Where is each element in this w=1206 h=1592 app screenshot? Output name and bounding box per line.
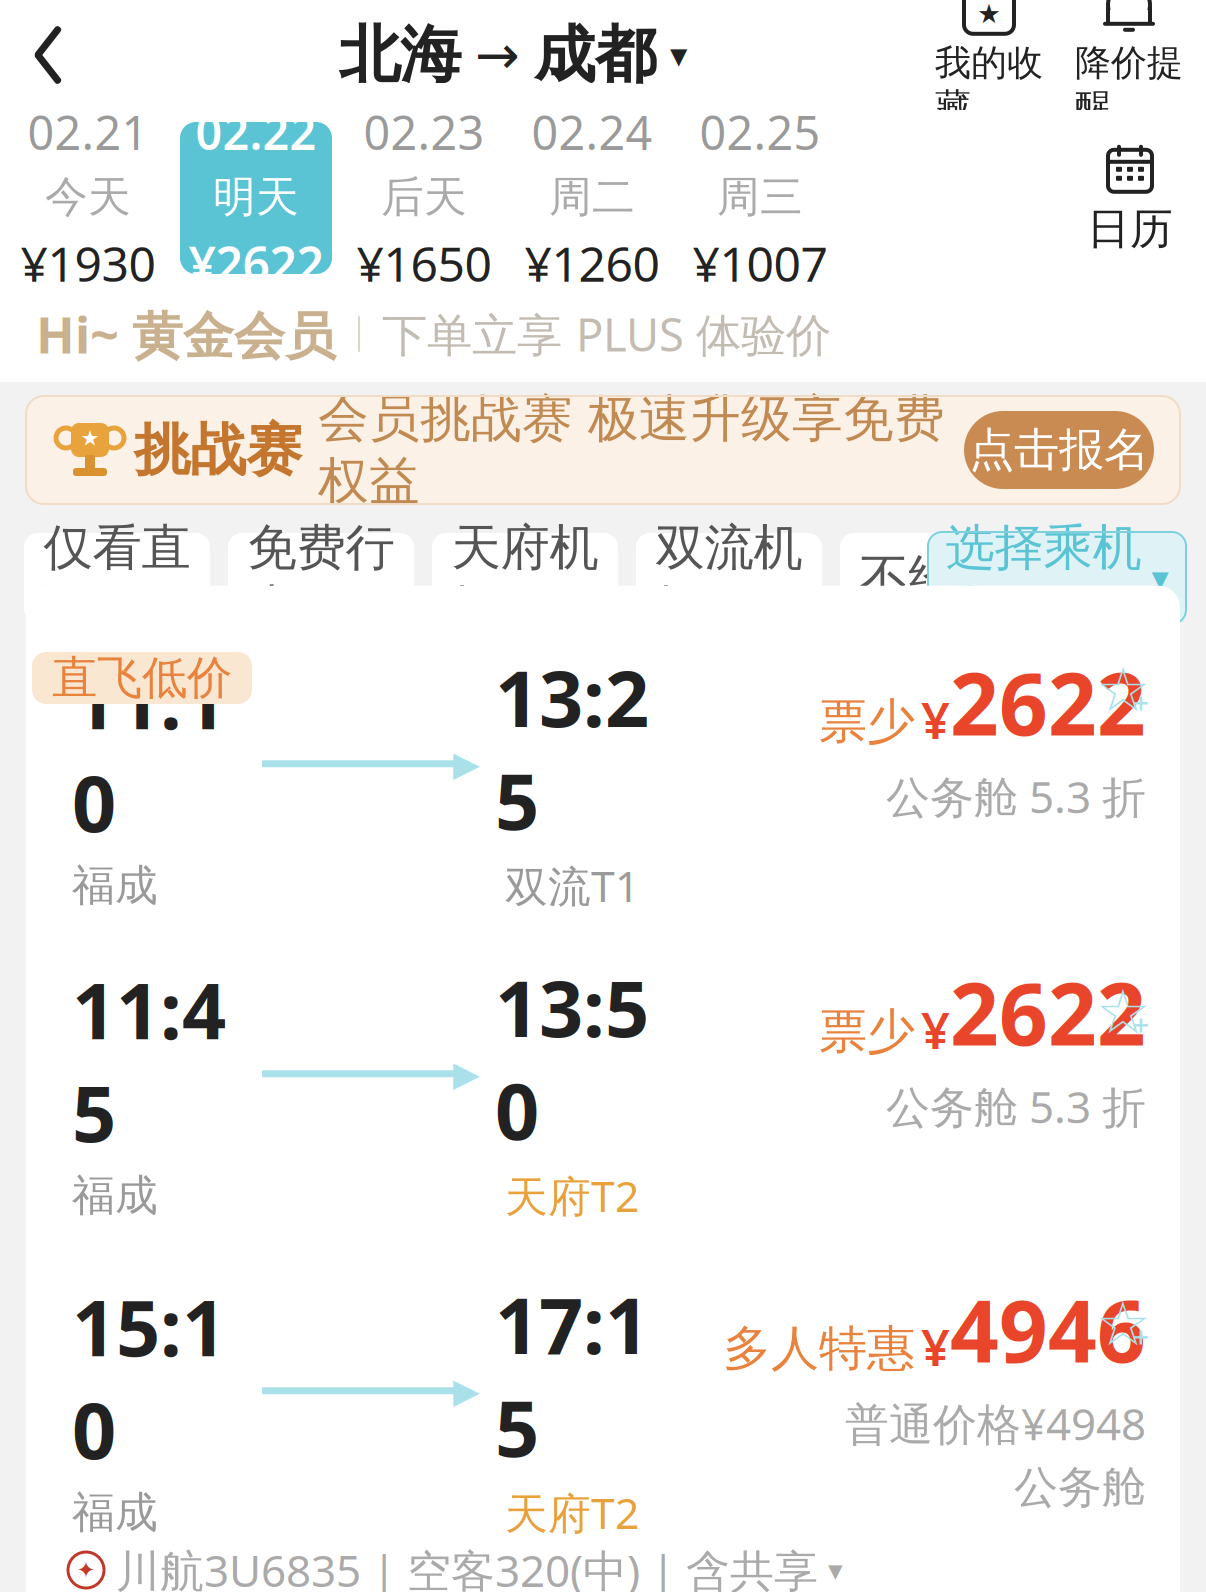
staticText: + [1132, 1316, 1149, 1355]
staticText: Hi~ 黄金会员 [36, 300, 336, 368]
staticText: 13:50 [495, 956, 649, 1161]
staticText: 02.21 [27, 101, 148, 163]
button[interactable]: 北海 [331, 7, 695, 103]
staticText: ▶ [453, 744, 480, 783]
staticText: 仅看直飞 [43, 517, 190, 639]
staticText: ★ [80, 426, 99, 450]
staticText: 天府T2 [505, 1484, 639, 1541]
staticText: ▾ [670, 35, 687, 75]
staticText: 双流机场 [655, 517, 802, 639]
staticText: ★ [977, 0, 1001, 29]
staticText: 2622 [950, 956, 1146, 1069]
button[interactable]: 仅看直飞 [24, 533, 210, 623]
staticText: ¥1930 [20, 231, 155, 295]
staticText: ¥2622 [188, 231, 323, 295]
staticText: 02.24 [531, 101, 652, 163]
button[interactable]: 02.25 [684, 122, 836, 274]
staticText: ¥1260 [524, 231, 659, 295]
button[interactable]: 收藏航班 [1092, 646, 1180, 720]
staticText: → [475, 25, 520, 85]
staticText: 福成 [72, 859, 158, 912]
staticText: 降价提醒 [1075, 41, 1183, 129]
staticText: ¥ [921, 996, 950, 1063]
staticText: ▶ [453, 1054, 480, 1093]
staticText: 天府T2 [505, 1167, 639, 1224]
staticText: 02.25 [699, 101, 820, 163]
button[interactable]: 02.23 [348, 122, 500, 274]
staticText: 后天 [381, 171, 467, 223]
staticText: 今天 [45, 171, 131, 223]
staticText: 选择乘机人 [945, 517, 1141, 639]
button[interactable]: 不经停 [840, 533, 1026, 623]
staticText: 02.23 [363, 101, 484, 163]
staticText: ¥1007 [692, 231, 827, 295]
button[interactable]: 02.22 [180, 122, 332, 274]
staticText: 点击报名 [969, 422, 1149, 478]
staticText: 11:10 [72, 648, 226, 853]
button[interactable]: 日历 [1054, 113, 1206, 283]
staticText: + [1132, 682, 1149, 721]
staticText: 公务舱 5.3 折 [886, 767, 1146, 825]
staticText: 2622 [950, 646, 1146, 759]
staticText: ☆ [1095, 977, 1150, 1047]
staticText: 川航3U6835 | 空客320(中) | 含共享 [116, 1541, 818, 1592]
staticText: 免费行李 [247, 517, 394, 639]
staticText: ▶ [453, 1371, 480, 1410]
button[interactable]: 15:10 [0, 1227, 1206, 1592]
staticText: 下单立享 PLUS 体验价 [382, 304, 831, 364]
button[interactable]: 收藏航班 [1092, 1280, 1180, 1354]
staticText: 公务舱 [1014, 1460, 1146, 1514]
staticText: ▾ [1151, 558, 1168, 598]
staticText: ▾ [828, 1553, 843, 1587]
staticText: 13:25 [495, 646, 649, 851]
staticText: 02.22 [195, 101, 316, 163]
staticText: 票少 [819, 1002, 915, 1061]
staticText: 普通价格¥4948 [845, 1394, 1146, 1452]
staticText: 双流T1 [505, 857, 639, 914]
staticText: ✦ [76, 1557, 95, 1583]
staticText: 4946 [950, 1273, 1146, 1386]
staticText: + [1132, 1004, 1149, 1043]
button[interactable]: 11:10 [0, 586, 1206, 1006]
staticText: ☆ [1095, 1289, 1150, 1359]
staticText: ¥ [921, 686, 950, 753]
button[interactable]: 02.24 [516, 122, 668, 274]
button[interactable]: 收藏航班 [1092, 968, 1180, 1042]
button[interactable]: Hi~ 黄金会员 [0, 286, 1206, 382]
staticText: 明天 [213, 171, 299, 223]
button[interactable]: 免费行李 [228, 533, 414, 623]
button[interactable]: 天府机场 [432, 533, 618, 623]
staticText: 周二 [549, 171, 635, 223]
button[interactable]: ★ [930, 0, 1048, 129]
staticText: 周三 [717, 171, 803, 223]
staticText: 公务舱 5.3 折 [886, 1077, 1146, 1135]
button[interactable]: 降价提醒 [1070, 0, 1188, 129]
staticText: 日历 [1087, 203, 1173, 255]
staticText: ¥ [921, 1313, 950, 1380]
staticText: 会员挑战赛 极速升级享免费权益 [318, 388, 945, 512]
staticText: 不经停 [859, 548, 1006, 608]
staticText: 票少 [819, 692, 915, 751]
staticText: 我的收藏 [935, 41, 1043, 129]
button[interactable]: 02.21 [12, 122, 164, 274]
staticText: 福成 [72, 1169, 158, 1222]
staticText: 天府机场 [451, 517, 598, 639]
button[interactable]: 返回 [0, 7, 96, 103]
staticText: 17:15 [495, 1273, 649, 1478]
staticText: 多人特惠 [723, 1319, 915, 1378]
button[interactable]: ★ [0, 396, 1206, 504]
staticText: 挑战赛 [134, 416, 302, 484]
staticText: 11:45 [72, 958, 226, 1163]
button[interactable]: 双流机场 [636, 533, 822, 623]
button[interactable]: 11:45 [0, 910, 1206, 1316]
staticText: 直飞低价 [52, 650, 232, 706]
staticText: 福成 [72, 1486, 158, 1539]
staticText: 北海 [339, 17, 461, 93]
button[interactable]: 选择乘机人 [928, 532, 1186, 624]
staticText: 成都 [534, 17, 656, 93]
